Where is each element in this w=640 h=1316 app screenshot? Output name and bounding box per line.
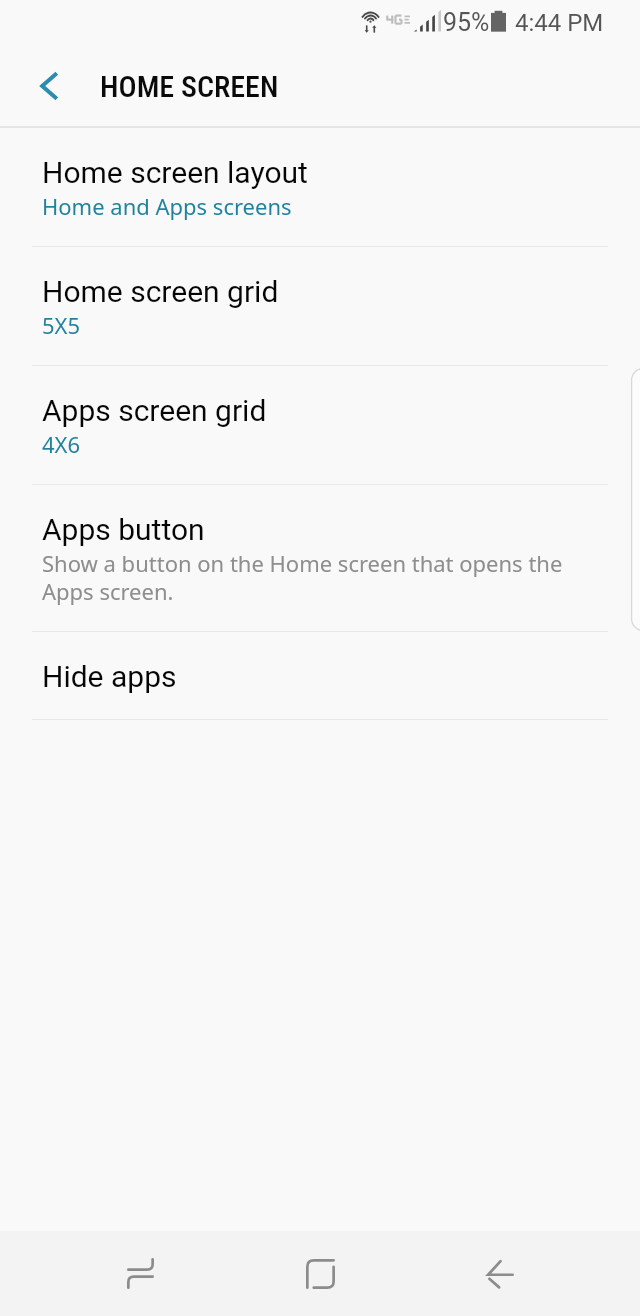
button[interactable]: Home xyxy=(260,1231,380,1316)
staticText: 4X6 xyxy=(42,431,81,459)
staticText: Apps button xyxy=(42,511,205,547)
button[interactable]: Back xyxy=(440,1231,560,1316)
staticText: Apps screen grid xyxy=(42,392,267,428)
button[interactable]: Apps button xyxy=(0,485,640,632)
staticText: Home screen grid xyxy=(42,273,279,309)
staticText: 95% xyxy=(443,7,490,37)
staticText: 5X5 xyxy=(42,312,81,340)
button[interactable]: Hide apps xyxy=(0,632,640,719)
staticText: Show a button on the Home screen that op… xyxy=(42,550,598,606)
button[interactable]: Home screen layout xyxy=(0,127,640,247)
staticText: Home and Apps screens xyxy=(42,193,292,221)
button[interactable]: Home screen grid xyxy=(0,247,640,366)
button[interactable]: Back xyxy=(21,60,77,112)
button[interactable]: Recent apps xyxy=(80,1231,200,1316)
staticText: HOME SCREEN xyxy=(100,70,279,104)
staticText: 4:44 PM xyxy=(515,7,604,37)
staticText: Home screen layout xyxy=(42,154,308,190)
staticText: Hide apps xyxy=(42,658,177,694)
button[interactable]: Apps screen grid xyxy=(0,366,640,485)
